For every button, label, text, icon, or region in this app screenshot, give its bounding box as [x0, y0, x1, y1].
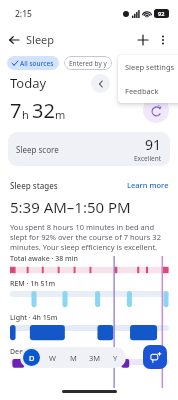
staticText: 91 — [145, 135, 162, 154]
staticText: Sleep score — [16, 144, 59, 155]
button[interactable]: D — [20, 347, 42, 368]
staticText: Learn more — [127, 180, 169, 190]
staticText: Light · 4h 15m — [10, 313, 58, 323]
button[interactable]: Sleep settings — [118, 55, 178, 79]
staticText: W — [49, 353, 56, 363]
staticText: 7 — [10, 97, 22, 124]
staticText: You spent 8 hours 10 minutes in bed and … — [10, 222, 169, 252]
staticText: 5:39 AM–1:50 PM — [10, 197, 131, 217]
button[interactable]: All sources — [7, 56, 59, 70]
staticText: Total awake · 38 min — [10, 254, 78, 264]
staticText: Y — [113, 353, 118, 363]
staticText: Deep · 1h 26m — [10, 347, 58, 357]
staticText: 2:15 — [15, 8, 32, 20]
button[interactable]: Feedback — [118, 79, 178, 103]
staticText: Excellent — [134, 154, 162, 163]
staticText: Sleep settings — [125, 62, 175, 72]
staticText: Entered by y — [69, 59, 107, 68]
button[interactable]: Entered by y — [64, 56, 112, 70]
staticText: All sources — [20, 59, 54, 68]
staticText: REM · 1h 51m — [10, 279, 56, 289]
staticText: h — [22, 107, 29, 122]
button[interactable]: Learn more — [127, 180, 178, 190]
staticText: 32 — [32, 97, 55, 124]
button[interactable]: Sleep mode — [143, 97, 169, 123]
staticText: m — [55, 107, 66, 122]
staticText: Today — [10, 74, 47, 92]
button[interactable]: Back — [4, 30, 24, 50]
button[interactable]: Y — [105, 347, 126, 368]
staticText: Sleep stages — [10, 180, 58, 191]
staticText: D — [29, 353, 35, 363]
button[interactable]: M — [63, 347, 84, 368]
staticText: 92 — [158, 10, 165, 17]
staticText: Feedback — [125, 86, 159, 96]
staticText: M — [70, 353, 77, 363]
button[interactable]: W — [42, 347, 63, 368]
button[interactable]: More options — [153, 30, 173, 50]
button[interactable]: 3M — [84, 347, 105, 368]
button[interactable]: Add — [133, 30, 153, 50]
staticText: Sleep — [26, 32, 55, 47]
staticText: 3M — [89, 353, 101, 363]
button[interactable]: Previous day — [91, 74, 110, 93]
button[interactable]: Add note — [143, 345, 167, 369]
button[interactable]: Sleep score — [8, 132, 170, 166]
